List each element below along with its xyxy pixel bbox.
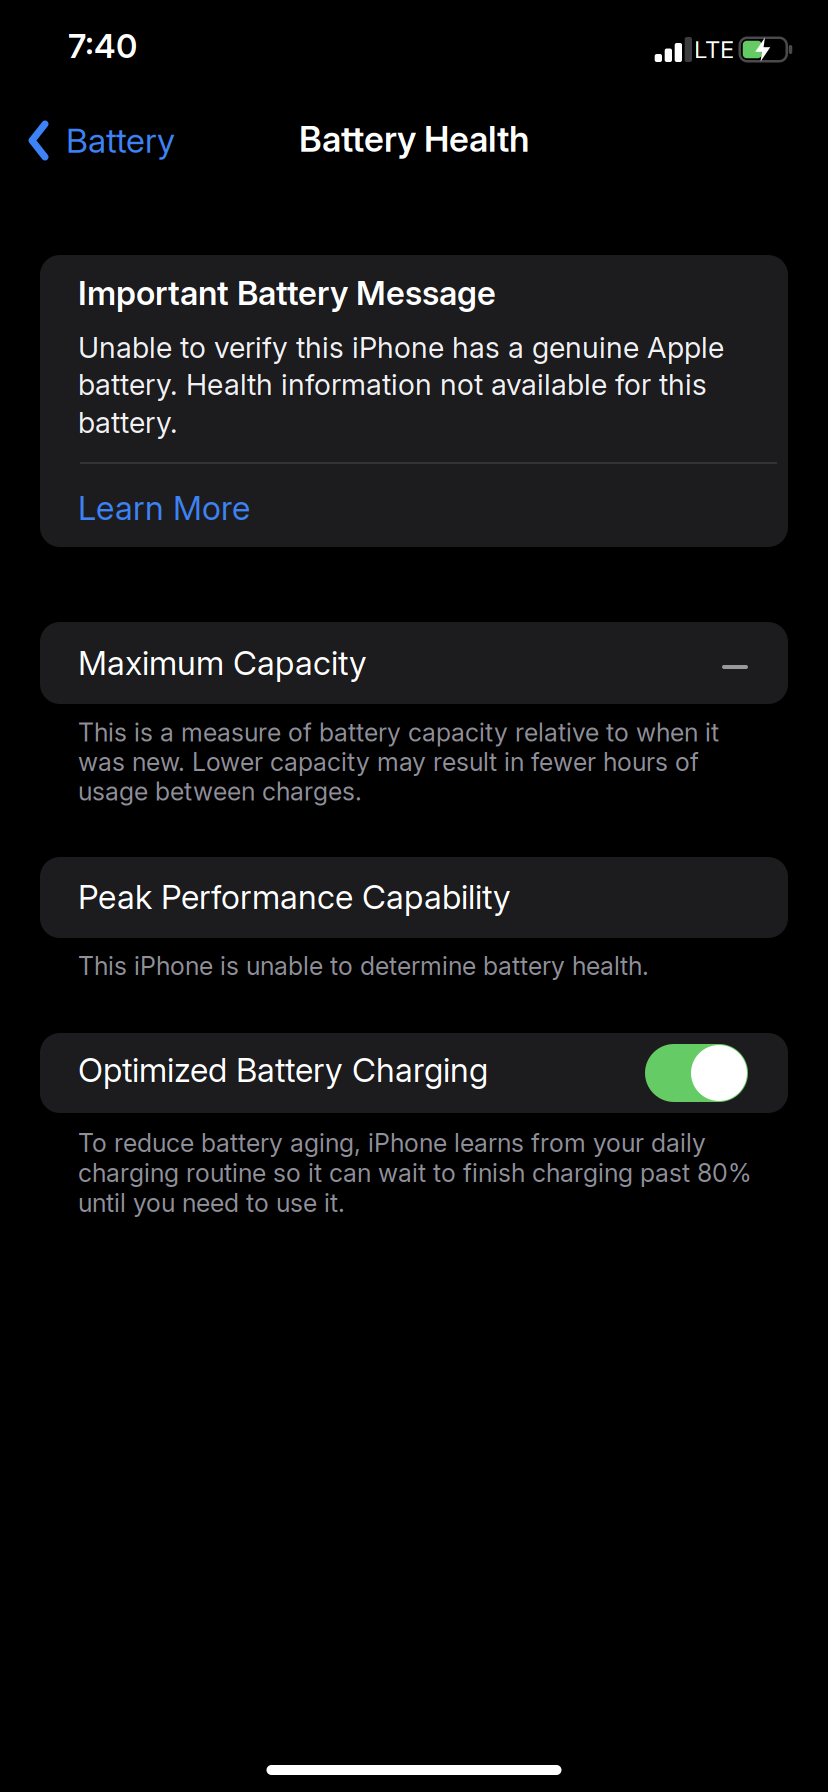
staticText: Optimized Battery Charging	[78, 1050, 488, 1090]
staticText: To reduce battery aging, iPhone learns f…	[78, 1128, 706, 1158]
staticText: battery. Health information not availabl…	[78, 367, 707, 402]
staticText: charging routine so it can wait to finis…	[78, 1158, 752, 1188]
staticText: usage between charges.	[78, 776, 362, 807]
staticText: This is a measure of battery capacity re…	[78, 717, 719, 748]
staticText: until you need to use it.	[78, 1188, 345, 1218]
staticText: Maximum Capacity	[78, 643, 367, 683]
staticText: Battery Health	[299, 118, 529, 160]
staticText: Unable to verify this iPhone has a genui…	[78, 330, 724, 365]
staticText: was new. Lower capacity may result in fe…	[78, 747, 699, 777]
staticText: Peak Performance Capability	[78, 877, 511, 917]
staticText: Important Battery Message	[78, 273, 496, 313]
staticText: LTE	[694, 35, 734, 64]
button[interactable]: Back	[28, 120, 175, 161]
button[interactable]: Optimized Battery Charging	[645, 1044, 748, 1102]
staticText: Battery	[66, 120, 175, 161]
staticText: This iPhone is unable to determine batte…	[78, 951, 649, 981]
button[interactable]: Learn More	[78, 488, 250, 528]
staticText: Learn More	[78, 488, 250, 528]
staticText: 7:40	[68, 26, 137, 66]
staticText: battery.	[78, 405, 178, 440]
